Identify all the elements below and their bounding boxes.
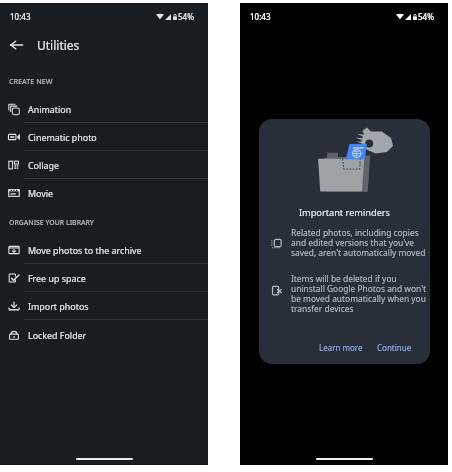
- button[interactable]: Back: [2, 28, 30, 62]
- staticText: Cinematic photo: [28, 131, 97, 143]
- staticText: Collage: [28, 159, 60, 171]
- staticText: Import photos: [28, 300, 89, 312]
- button[interactable]: Free up space: [0, 264, 208, 292]
- staticText: Related photos, including copies and edi…: [291, 227, 427, 258]
- button[interactable]: Movie: [0, 179, 208, 207]
- staticText: ORGANISE YOUR LIBRARY: [9, 218, 94, 227]
- staticText: Locked Folder: [28, 329, 87, 341]
- button[interactable]: Move photos to the archive: [0, 236, 208, 264]
- button[interactable]: Learn more: [312, 338, 370, 357]
- button[interactable]: Cinematic photo: [0, 123, 208, 151]
- staticText: Move photos to the archive: [28, 244, 142, 256]
- button[interactable]: Import photos: [0, 292, 208, 320]
- staticText: Animation: [28, 103, 72, 115]
- staticText: Learn more: [319, 342, 363, 353]
- button[interactable]: Continue: [370, 338, 419, 357]
- staticText: CREATE NEW: [9, 76, 53, 86]
- staticText: Movie: [28, 187, 54, 199]
- staticText: Important reminders: [259, 206, 430, 219]
- staticText: 54%: [178, 11, 194, 22]
- button[interactable]: Collage: [0, 151, 208, 179]
- button[interactable]: Animation: [0, 95, 208, 123]
- staticText: Items will be deleted if you uninstall G…: [291, 273, 427, 314]
- staticText: Continue: [377, 342, 412, 353]
- staticText: Free up space: [28, 272, 86, 284]
- staticText: 10:43: [250, 11, 271, 22]
- button[interactable]: Locked Folder: [0, 321, 208, 349]
- staticText: Utilities: [37, 37, 80, 53]
- staticText: 54%: [418, 11, 434, 22]
- staticText: 10:43: [10, 11, 31, 22]
